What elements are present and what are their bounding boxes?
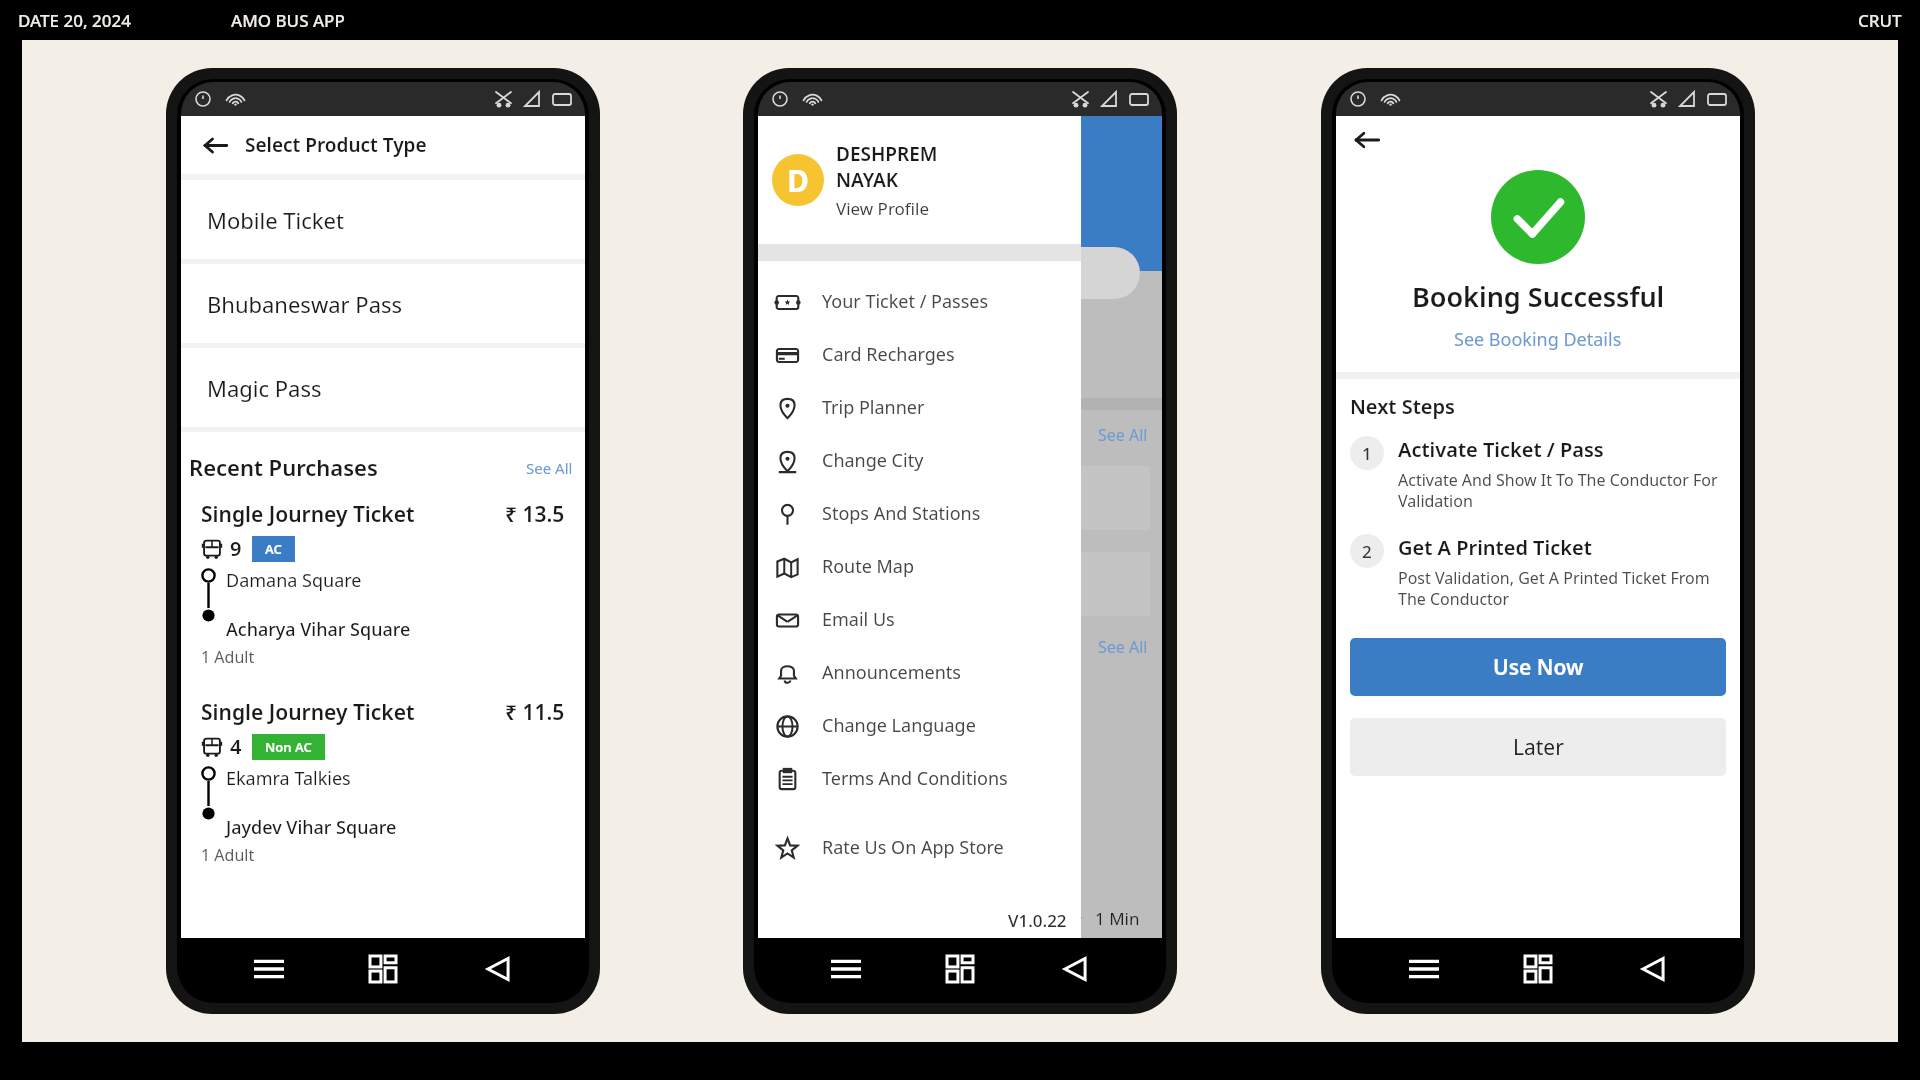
staticText: Mobile Ticket xyxy=(207,205,344,235)
button[interactable]: Mobile Ticket xyxy=(181,180,585,259)
staticText: Non AC xyxy=(265,738,312,756)
staticText: See All xyxy=(1098,424,1148,446)
staticText: See Booking Details xyxy=(1454,327,1622,352)
button[interactable]: Use Now xyxy=(1350,638,1726,696)
staticText: Stops And Stations xyxy=(822,501,981,526)
staticText: View Profile xyxy=(836,197,930,220)
staticText: ₹ 13.5 xyxy=(505,500,565,529)
staticText: D xyxy=(787,160,809,201)
staticText: Change Language xyxy=(822,713,976,738)
button[interactable]: Back xyxy=(195,125,235,165)
button[interactable]: Magic Pass xyxy=(181,348,585,427)
button[interactable]: Trip Planner xyxy=(758,381,1081,434)
staticText: Change City xyxy=(822,448,924,473)
staticText: Later xyxy=(1513,733,1564,762)
staticText: AC xyxy=(265,540,282,558)
button[interactable]: Menu xyxy=(242,942,296,996)
staticText: Card Recharges xyxy=(822,342,955,367)
staticText: Bhubaneswar Pass xyxy=(207,289,403,319)
button[interactable]: See Booking Details xyxy=(1450,323,1626,356)
staticText: Trip Planner xyxy=(822,395,925,420)
staticText: Jaydev Vihar Square xyxy=(226,815,397,840)
staticText: Select Product Type xyxy=(245,132,427,158)
staticText: Use Now xyxy=(1493,653,1584,682)
staticText: Single Journey Ticket xyxy=(201,500,415,529)
staticText: Bus Pass xyxy=(786,485,865,511)
staticText: NAYAK xyxy=(836,167,899,193)
staticText: Rate Us On App Store xyxy=(822,835,1004,860)
staticText: Recharge Card xyxy=(786,571,917,597)
staticText: 10A xyxy=(812,329,852,359)
staticText: AC xyxy=(878,335,895,353)
button[interactable]: Back xyxy=(1048,942,1102,996)
staticText: Damana Square xyxy=(226,568,362,593)
button[interactable]: Recents xyxy=(1511,942,1565,996)
staticText: 4 xyxy=(230,733,242,760)
staticText: Ekamra Talkies xyxy=(226,766,351,791)
staticText: 1 Min xyxy=(1095,907,1140,930)
staticText: Route Map xyxy=(822,554,915,579)
button[interactable]: Single Journey Ticket xyxy=(187,688,579,876)
button[interactable]: Menu xyxy=(1397,942,1451,996)
staticText: Activate And Show It To The Conductor Fo… xyxy=(1398,469,1726,512)
button[interactable]: Rate Us On App Store xyxy=(758,821,1081,874)
button[interactable]: Back xyxy=(1626,942,1680,996)
staticText: 9 xyxy=(230,535,242,562)
button[interactable]: Change Language xyxy=(758,699,1081,752)
staticText: To Jharpada xyxy=(812,359,907,382)
button[interactable]: D xyxy=(758,116,1081,244)
button[interactable]: Route Map xyxy=(758,540,1081,593)
staticText: V1.0.22 xyxy=(1008,909,1067,932)
button[interactable]: Menu xyxy=(819,942,873,996)
staticText: Post Validation, Get A Printed Ticket Fr… xyxy=(1398,567,1726,610)
staticText: Single Journey Ticket xyxy=(201,698,415,727)
staticText: See All xyxy=(1098,636,1148,658)
staticText: Email Us xyxy=(822,607,895,632)
staticText: Announcements xyxy=(822,660,961,685)
button[interactable]: Single Journey Ticket xyxy=(187,490,579,678)
staticText: DATE 20, 2024 xyxy=(18,9,131,32)
staticText: Get A Printed Ticket xyxy=(1398,534,1592,561)
staticText: CRUT xyxy=(1858,9,1902,32)
button[interactable]: Back xyxy=(471,942,525,996)
staticText: Acharya Vihar Square xyxy=(226,617,411,642)
button[interactable]: Email Us xyxy=(758,593,1081,646)
staticText: Next Steps xyxy=(1350,393,1455,420)
staticText: 1 Adult xyxy=(201,844,255,866)
staticText: See All xyxy=(526,458,573,478)
staticText: DESHPREM xyxy=(836,141,938,167)
button[interactable]: Later xyxy=(1350,718,1726,776)
staticText: Booking Successful xyxy=(1412,278,1665,315)
button[interactable]: Recents xyxy=(933,942,987,996)
staticText: Terms And Conditions xyxy=(822,766,1008,791)
staticText: ₹ 11.5 xyxy=(505,698,565,727)
staticText: Your Ticket / Passes xyxy=(822,289,989,314)
button[interactable]: Stops And Stations xyxy=(758,487,1081,540)
button[interactable]: Terms And Conditions xyxy=(758,752,1081,805)
staticText: Activate Ticket / Pass xyxy=(1398,436,1604,463)
button[interactable]: Change City xyxy=(758,434,1081,487)
button[interactable]: Card Recharges xyxy=(758,328,1081,381)
staticText: 1 Adult xyxy=(201,646,255,668)
button[interactable]: Bhubaneswar Pass xyxy=(181,264,585,343)
staticText: 1 xyxy=(1362,442,1372,465)
staticText: AMO BUS APP xyxy=(231,9,345,32)
staticText: Recent Purchases xyxy=(189,452,378,482)
staticText: Magic Pass xyxy=(207,373,322,403)
button[interactable]: See All xyxy=(522,454,577,482)
button[interactable]: Recents xyxy=(356,942,410,996)
button[interactable]: Announcements xyxy=(758,646,1081,699)
button[interactable]: Back xyxy=(1346,119,1388,161)
staticText: 2 xyxy=(1362,540,1372,563)
button[interactable]: Your Ticket / Passes xyxy=(758,275,1081,328)
